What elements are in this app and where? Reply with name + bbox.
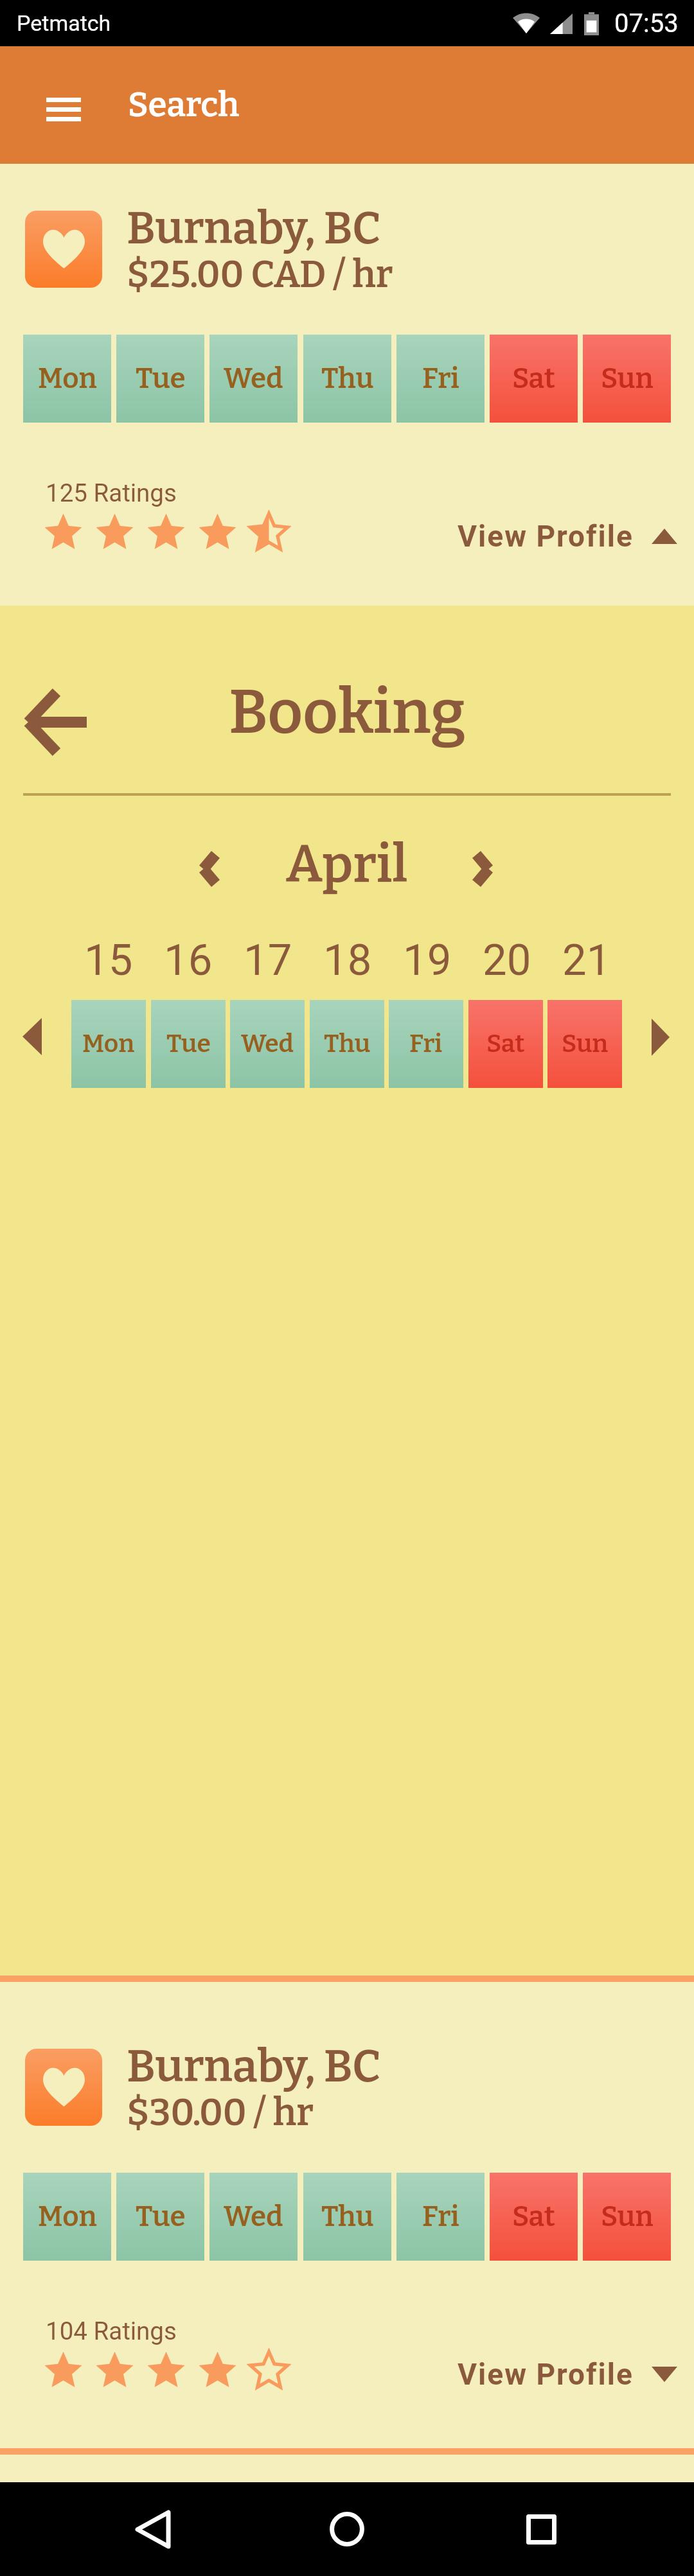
button[interactable]: Sat	[490, 335, 578, 423]
button[interactable]: Previous month	[198, 849, 221, 889]
staticText: 07:53	[614, 8, 679, 39]
button[interactable]: View Profile	[458, 519, 677, 554]
button[interactable]: Next month	[471, 849, 494, 889]
button[interactable]: Wed	[209, 2173, 298, 2261]
button[interactable]: Thu	[310, 1000, 384, 1088]
staticText: Wed	[241, 1029, 294, 1059]
button[interactable]: Thu	[303, 335, 391, 423]
staticText: Wed	[224, 2200, 283, 2234]
button[interactable]: Mon	[23, 335, 111, 423]
staticText: Mon	[38, 2200, 97, 2234]
staticText: 20	[483, 935, 531, 986]
staticText: Fri	[409, 1029, 443, 1059]
button[interactable]: View Profile	[458, 2357, 677, 2392]
staticText: Booking	[229, 676, 466, 749]
button[interactable]: Recent apps	[496, 2484, 586, 2574]
staticText: Burnaby, BC	[127, 202, 381, 256]
button[interactable]: Sun	[583, 2173, 671, 2261]
staticText: Sat	[486, 1029, 525, 1059]
button[interactable]: Sun	[547, 1000, 622, 1088]
button[interactable]: Wed	[209, 335, 298, 423]
button[interactable]: Tue	[116, 335, 204, 423]
button[interactable]: Sat	[490, 2173, 578, 2261]
button[interactable]: Fri	[389, 1000, 463, 1088]
staticText: Fri	[422, 362, 459, 396]
staticText: Mon	[38, 362, 97, 396]
button[interactable]: Mon	[23, 2173, 111, 2261]
staticText: Sun	[562, 1029, 609, 1059]
staticText: Fri	[422, 2200, 459, 2234]
staticText: Thu	[321, 2200, 374, 2234]
button[interactable]: Previous week	[22, 1018, 42, 1055]
staticText: 18	[323, 935, 372, 986]
staticText: 19	[403, 935, 452, 986]
staticText: 15	[84, 935, 133, 986]
button[interactable]: Menu	[46, 98, 81, 121]
staticText: Search	[128, 84, 240, 125]
button[interactable]: Back	[24, 691, 87, 753]
staticText: Sat	[512, 2200, 555, 2234]
staticText: April	[286, 834, 408, 895]
staticText: Thu	[324, 1029, 371, 1059]
button[interactable]: Sun	[583, 335, 671, 423]
button[interactable]: Thu	[303, 2173, 391, 2261]
staticText: Petmatch	[17, 10, 111, 36]
button[interactable]: Home	[302, 2484, 392, 2574]
button[interactable]: Favourite	[25, 211, 102, 288]
button[interactable]: Fri	[396, 2173, 485, 2261]
button[interactable]: Next week	[652, 1019, 670, 1056]
button[interactable]: Favourite	[25, 2049, 102, 2126]
button[interactable]: Back	[108, 2484, 198, 2574]
button[interactable]: Mon	[71, 1000, 146, 1088]
staticText: 21	[562, 935, 611, 986]
staticText: View Profile	[458, 519, 634, 554]
staticText: Wed	[224, 362, 283, 396]
staticText: 104 Ratings	[46, 2317, 177, 2345]
staticText: Sun	[601, 362, 654, 396]
staticText: Tue	[136, 362, 186, 396]
button[interactable]: Fri	[396, 335, 485, 423]
staticText: Tue	[166, 1029, 211, 1059]
staticText: Sun	[601, 2200, 654, 2234]
staticText: Mon	[82, 1029, 135, 1059]
button[interactable]: Sat	[468, 1000, 543, 1088]
staticText: Burnaby, BC	[127, 2040, 381, 2094]
staticText: 125 Ratings	[46, 478, 177, 507]
button[interactable]: Tue	[151, 1000, 226, 1088]
staticText: Tue	[136, 2200, 186, 2234]
staticText: $25.00 CAD / hr	[127, 252, 393, 297]
staticText: Sat	[512, 362, 555, 396]
staticText: View Profile	[458, 2357, 634, 2392]
staticText: 17	[244, 935, 292, 986]
button[interactable]: Wed	[230, 1000, 305, 1088]
staticText: Thu	[321, 362, 374, 396]
button[interactable]: Tue	[116, 2173, 204, 2261]
staticText: 16	[164, 935, 213, 986]
staticText: $30.00 / hr	[127, 2090, 314, 2135]
